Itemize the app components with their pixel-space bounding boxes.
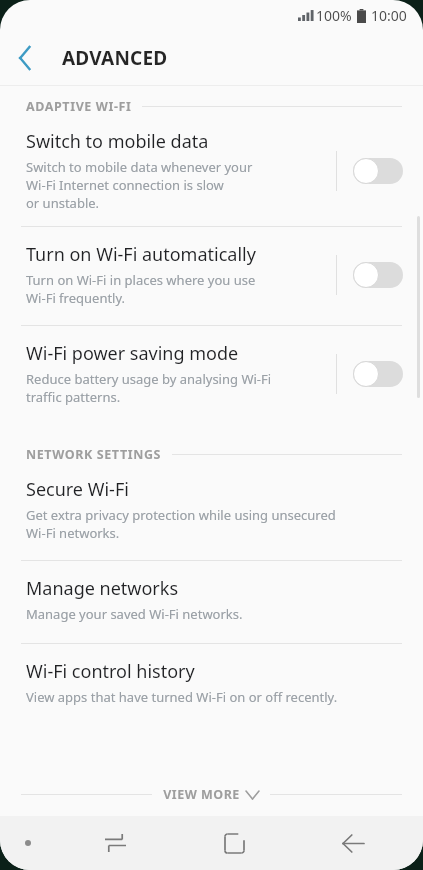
staticText: View apps that have turned Wi-Fi on or o… [26, 688, 338, 706]
staticText: Switch to mobile data whenever your [26, 158, 253, 176]
staticText: Manage networks [26, 576, 179, 601]
staticText: traffic patterns. [26, 388, 121, 406]
staticText: ADVANCED [62, 45, 168, 71]
staticText: Wi-Fi control history [26, 659, 195, 684]
button[interactable]: Switch to mobile data [0, 115, 423, 226]
staticText: VIEW MORE [163, 786, 240, 803]
button[interactable]: Wi-Fi control history [0, 644, 423, 726]
staticText: Turn on Wi-Fi in places where you use [26, 271, 256, 289]
staticText: Wi-Fi power saving mode [26, 341, 239, 366]
staticText: NETWORK SETTINGS [26, 446, 162, 463]
staticText: Manage your saved Wi-Fi networks. [26, 605, 243, 623]
staticText: Wi-Fi networks. [26, 524, 120, 542]
button[interactable]: Toggle [351, 154, 405, 188]
button[interactable]: Home [175, 834, 294, 853]
button[interactable]: Back [0, 33, 50, 83]
staticText: or unstable. [26, 194, 100, 212]
button[interactable]: Wi-Fi power saving mode [0, 326, 423, 424]
staticText: Switch to mobile data [26, 129, 209, 154]
staticText: Get extra privacy protection while using… [26, 506, 336, 524]
button[interactable]: Toggle [351, 258, 405, 292]
staticText: Secure Wi-Fi [26, 477, 129, 502]
button[interactable]: Secure Wi-Fi [0, 463, 423, 560]
button[interactable]: Back [294, 835, 413, 852]
staticText: Turn on Wi-Fi automatically [26, 242, 256, 267]
button[interactable]: Manage networks [0, 561, 423, 643]
button[interactable]: Toggle [351, 357, 405, 391]
button[interactable]: Recents [55, 834, 175, 852]
button[interactable]: Turn on Wi-Fi automatically [0, 227, 423, 325]
staticText: Reduce battery usage by analysing Wi-Fi [26, 370, 272, 388]
staticText: 10:00 [371, 6, 407, 25]
button[interactable]: VIEW MORE [0, 782, 423, 807]
staticText: 100% [316, 6, 352, 25]
staticText: Wi-Fi Internet connection is slow [26, 176, 224, 194]
staticText: Wi-Fi frequently. [26, 289, 126, 307]
staticText: ADAPTIVE WI-FI [26, 98, 132, 115]
